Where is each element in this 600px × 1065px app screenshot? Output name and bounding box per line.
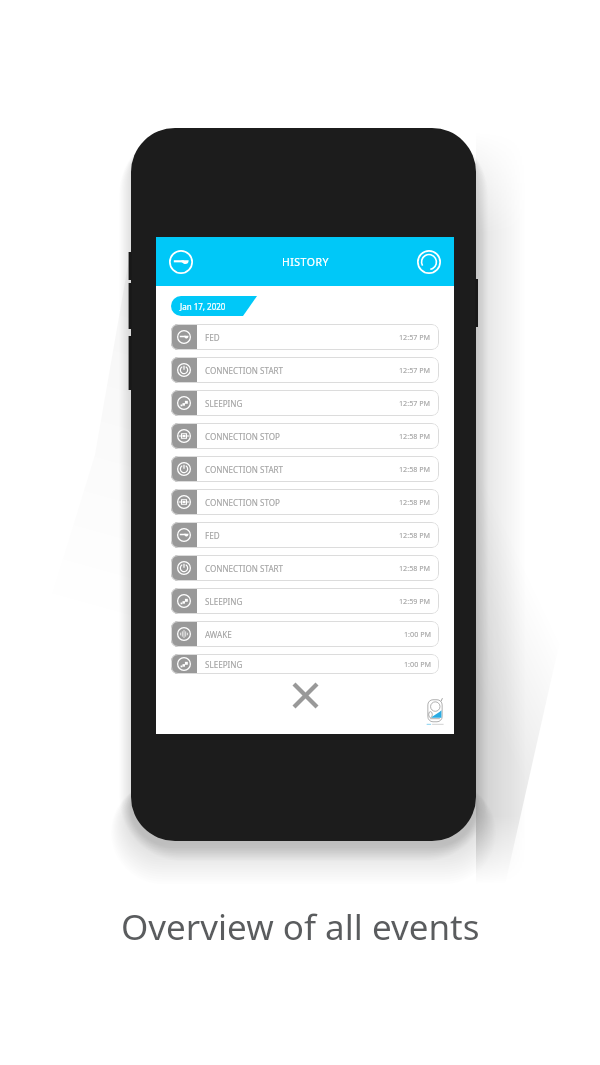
button[interactable]: AWAKE — [171, 621, 439, 647]
staticText: CONNECTION START — [205, 464, 399, 475]
button[interactable]: Refresh — [416, 249, 442, 275]
button[interactable]: Feeding — [168, 249, 194, 275]
staticText: CONNECTION START — [205, 563, 399, 574]
button[interactable]: SLEEPING — [171, 588, 439, 614]
staticText: 1:00 PM — [404, 659, 431, 669]
button[interactable]: CONNECTION START — [171, 456, 439, 482]
button[interactable]: CONNECTION START — [171, 555, 439, 581]
button[interactable]: SLEEPING — [171, 654, 439, 674]
staticText: 12:58 PM — [399, 497, 431, 507]
staticText: Jan 17, 2020 — [180, 301, 226, 312]
button[interactable]: SLEEPING — [171, 390, 439, 416]
staticText: FED — [205, 332, 399, 343]
button[interactable]: CONNECTION STOP — [171, 489, 439, 515]
staticText: SLEEPING — [205, 659, 404, 670]
staticText: FED — [205, 530, 399, 541]
staticText: Overview of all events — [121, 903, 480, 951]
staticText: 12:58 PM — [399, 530, 431, 540]
staticText: SLEEPING — [205, 398, 399, 409]
staticText: HISTORY — [282, 255, 329, 269]
staticText: AWAKE — [205, 629, 404, 640]
button[interactable]: CONNECTION START — [171, 357, 439, 383]
staticText: 12:58 PM — [399, 563, 431, 573]
staticText: 12:59 PM — [399, 596, 431, 606]
staticText: 12:57 PM — [399, 398, 431, 408]
staticText: 12:58 PM — [399, 464, 431, 474]
staticText: 12:57 PM — [399, 332, 431, 342]
button[interactable]: Close — [290, 680, 320, 710]
button[interactable]: CONNECTION STOP — [171, 423, 439, 449]
staticText: 12:57 PM — [399, 365, 431, 375]
staticText: 12:58 PM — [399, 431, 431, 441]
staticText: SLEEPING — [205, 596, 399, 607]
staticText: 1:00 PM — [404, 629, 431, 639]
staticText: CONNECTION STOP — [205, 497, 399, 508]
button[interactable]: FED — [171, 522, 439, 548]
staticText: CONNECTION START — [205, 365, 399, 376]
staticText: CONNECTION STOP — [205, 431, 399, 442]
button[interactable]: FED — [171, 324, 439, 350]
